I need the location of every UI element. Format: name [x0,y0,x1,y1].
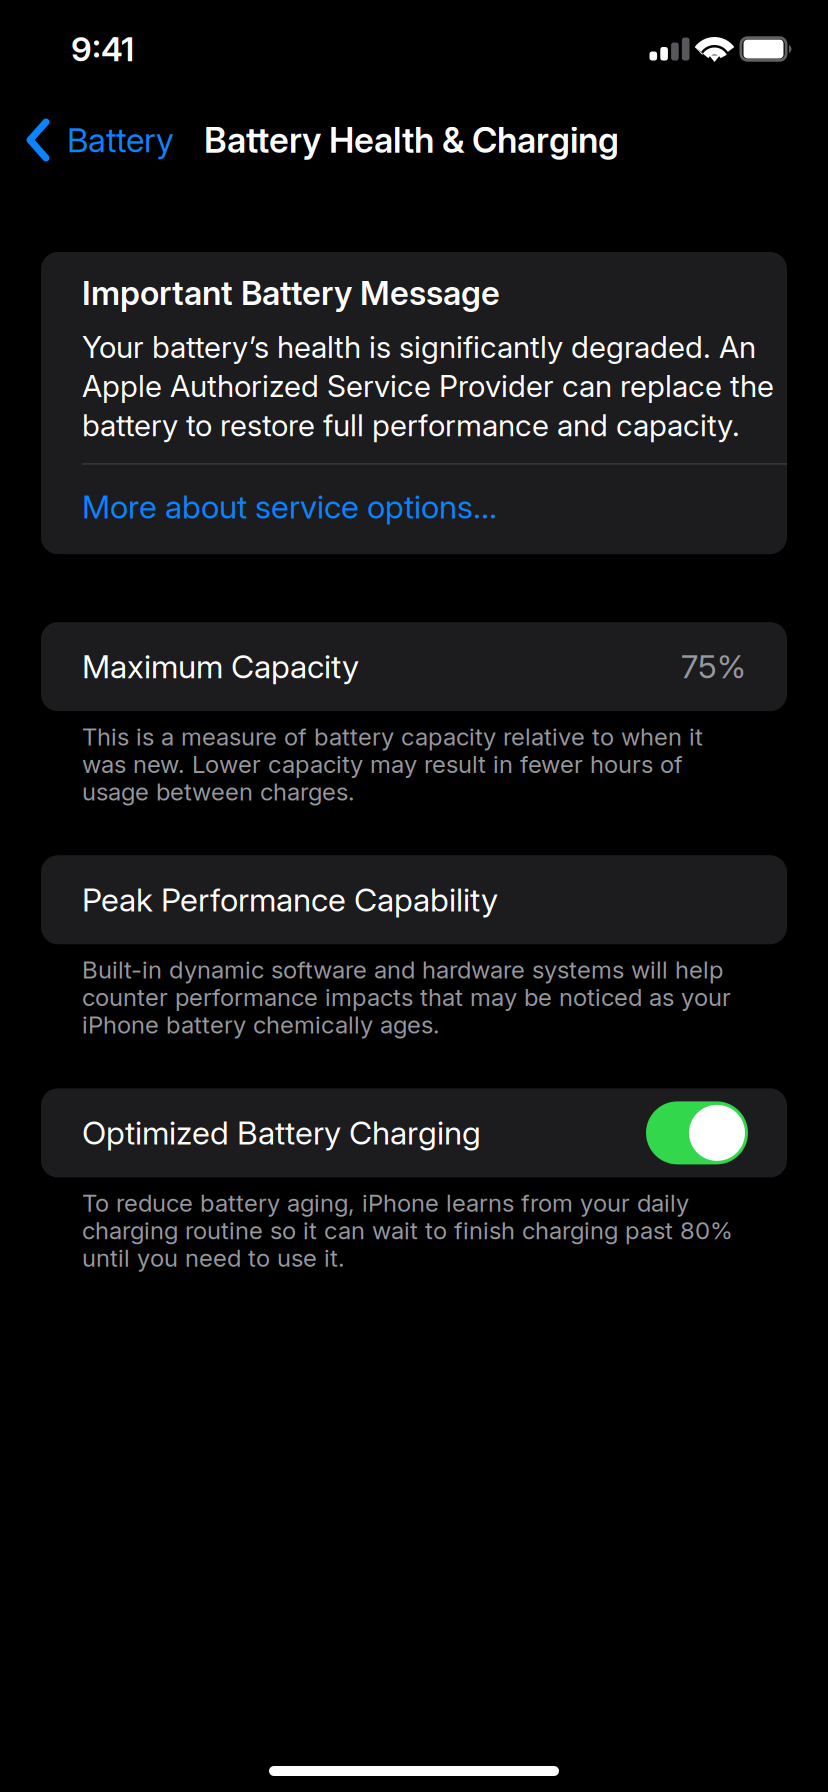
staticText: Built-in dynamic software and hardware s… [82,955,731,1039]
staticText: Your battery’s health is significantly d… [82,329,774,443]
staticText: 9:41 [71,29,134,69]
staticText: To reduce battery aging, iPhone learns f… [82,1188,733,1272]
button[interactable]: Battery [0,96,188,184]
staticText: Optimized Battery Charging [82,1113,481,1152]
staticText: Important Battery Message [82,273,500,313]
staticText: 75% [681,647,746,686]
button[interactable]: Optimized Battery Charging, on [646,1101,746,1164]
staticText: Battery Health & Charging [204,119,619,161]
button[interactable]: More about service options... [82,487,746,526]
staticText: Peak Performance Capability [82,880,498,919]
staticText: More about service options... [82,487,497,526]
button[interactable]: Peak Performance Capability [41,855,787,944]
staticText: Maximum Capacity [82,647,359,686]
staticText: This is a measure of battery capacity re… [82,722,703,806]
staticText: Battery [67,120,174,160]
